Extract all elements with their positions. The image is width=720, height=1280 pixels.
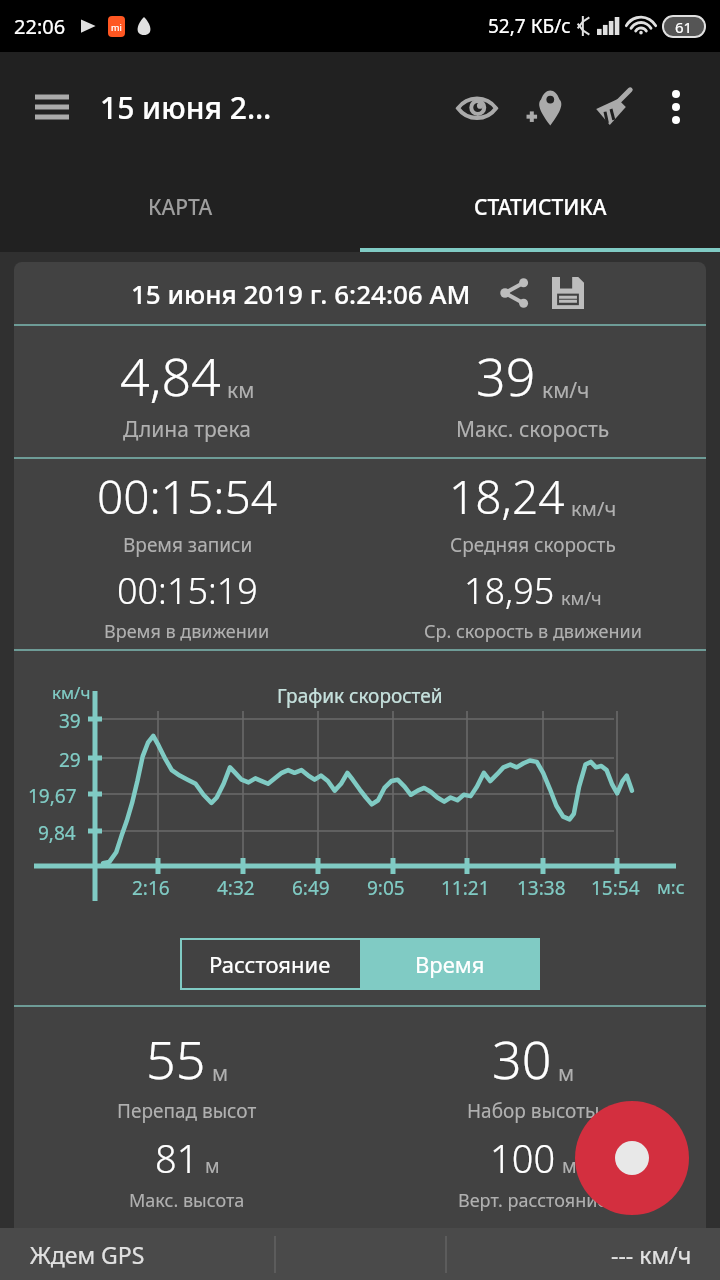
- staticText: км/ч: [571, 495, 617, 522]
- staticText: Длина трека: [123, 415, 251, 444]
- staticText: Макс. скорость: [456, 415, 610, 444]
- staticText: 61: [675, 17, 693, 37]
- button[interactable]: Menu: [24, 79, 80, 135]
- staticText: м:с: [657, 875, 685, 900]
- staticText: mi: [111, 21, 122, 33]
- staticText: 30: [492, 1023, 552, 1094]
- button[interactable]: Record: [575, 1101, 689, 1215]
- button[interactable]: СТАТИСТИКА: [360, 162, 720, 252]
- button[interactable]: Add waypoint: [516, 78, 574, 136]
- staticText: км/ч: [561, 586, 602, 611]
- button[interactable]: КАРТА: [0, 162, 360, 252]
- staticText: Средняя скорость: [450, 532, 616, 558]
- staticText: 11:21: [441, 875, 490, 901]
- staticText: 00:15:54: [97, 465, 278, 528]
- staticText: КАРТА: [148, 193, 213, 222]
- staticText: 00:15:19: [117, 566, 258, 615]
- staticText: 6:49: [292, 875, 330, 901]
- staticText: км/ч: [52, 681, 91, 704]
- staticText: Время: [415, 949, 485, 979]
- staticText: Расстояние: [209, 949, 331, 979]
- staticText: График скоростей: [277, 683, 443, 709]
- staticText: Ср. скорость в движении: [424, 619, 642, 644]
- staticText: 9:05: [367, 875, 405, 901]
- button[interactable]: Расстояние: [180, 938, 360, 990]
- button[interactable]: Share: [493, 272, 535, 314]
- staticText: Макс. высота: [129, 1188, 245, 1213]
- staticText: СТАТИСТИКА: [474, 193, 607, 222]
- staticText: 2:16: [132, 875, 170, 901]
- staticText: 13:38: [517, 875, 566, 901]
- staticText: 81: [155, 1132, 199, 1184]
- staticText: 18,95: [464, 566, 555, 615]
- button[interactable]: Save: [547, 272, 589, 314]
- staticText: км: [227, 376, 255, 405]
- staticText: Ждем GPS: [30, 1239, 145, 1270]
- staticText: м: [558, 1059, 575, 1088]
- button[interactable]: 15 июня 2019 г. 6:24:06 AM: [14, 262, 706, 324]
- staticText: м: [562, 1153, 577, 1179]
- button[interactable]: More options: [650, 81, 702, 133]
- staticText: 26: [155, 1221, 199, 1257]
- staticText: 15 июня 2…: [100, 87, 272, 128]
- staticText: 4,84: [120, 340, 221, 411]
- staticText: 15 июня 2019 г. 6:24:06 AM: [131, 276, 471, 311]
- staticText: 39: [476, 340, 536, 411]
- staticText: 39: [59, 708, 81, 734]
- staticText: Время в движении: [104, 619, 270, 644]
- staticText: 9,84: [38, 820, 76, 846]
- staticText: м: [205, 1153, 220, 1179]
- staticText: 100: [490, 1132, 556, 1184]
- staticText: --- км/ч: [611, 1239, 692, 1270]
- staticText: 0,11: [478, 1221, 552, 1257]
- staticText: 4:32: [217, 875, 255, 901]
- staticText: 15:54: [591, 875, 640, 901]
- staticText: Верт. расстояние: [458, 1188, 608, 1213]
- staticText: м: [212, 1059, 229, 1088]
- staticText: Перепад высот: [117, 1098, 257, 1124]
- staticText: 22:06: [14, 13, 66, 40]
- button[interactable]: Clear: [584, 78, 642, 136]
- staticText: 55: [146, 1023, 206, 1094]
- staticText: Время записи: [123, 532, 253, 558]
- button[interactable]: Visibility: [448, 78, 506, 136]
- staticText: 18,24: [449, 465, 565, 528]
- staticText: км/ч: [542, 376, 590, 405]
- staticText: 29: [59, 747, 81, 773]
- staticText: 19,67: [28, 783, 77, 809]
- staticText: 52,7 КБ/с: [488, 13, 571, 39]
- staticText: Набор высоты: [467, 1098, 600, 1124]
- button[interactable]: Время: [360, 938, 540, 990]
